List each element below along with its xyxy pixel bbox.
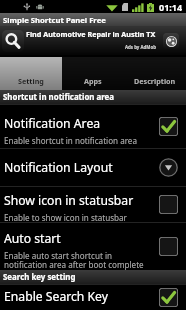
button[interactable]: Apps [62,57,124,90]
staticText: Enable Search Key [4,288,108,305]
staticText: Shortcut in notification area [3,92,115,103]
staticText: Description [134,76,176,86]
staticText: 01:14 [159,1,183,13]
other: Disabled [159,195,178,214]
staticText: Ads by AdMob [125,44,156,50]
button[interactable]: Enable Search Key [0,284,186,310]
other: Enabled [159,288,178,307]
staticText: Simple Shortcut Panel Free [3,15,106,25]
staticText: Search key setting [3,272,76,283]
staticText: Enable to show icon in statusbar [4,212,127,222]
button[interactable]: Setting [0,57,62,90]
staticText: Setting [18,76,44,86]
staticText: Show icon in statusbar [4,192,134,209]
staticText: Notification Area [4,115,101,132]
button[interactable]: Find Automotive Repair in Austin TX [0,26,186,55]
staticText: Notification Layout [4,159,113,176]
button[interactable]: Description [124,57,186,90]
button[interactable]: Auto start [0,222,186,270]
staticText: Apps [84,76,102,86]
staticText: Enable auto start shortcut in notificati… [4,250,144,270]
staticText: Auto start [4,230,61,247]
other: Enabled [159,117,178,136]
other: Disabled [159,237,178,256]
button[interactable]: Notification Area [0,104,186,148]
other: Open dropdown [159,158,178,177]
button[interactable]: Notification Layout [0,148,186,186]
button[interactable]: Show icon in statusbar [0,186,186,222]
staticText: Find Automotive Repair in Austin TX [26,29,156,39]
staticText: Enable shortcut in notification area [4,135,137,146]
